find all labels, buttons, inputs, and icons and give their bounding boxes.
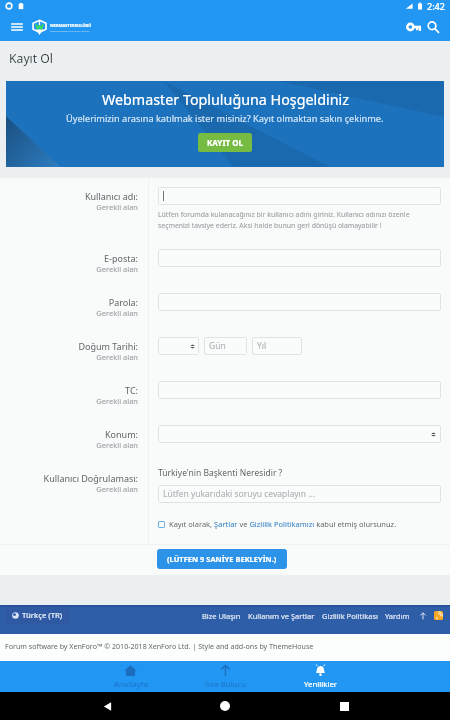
staticText: TC: [125,384,138,396]
staticText: Konum: [105,428,138,440]
staticText: KAYIT OL [207,137,243,148]
staticText: Türkiye'nin Başkenti Neresidir ? [158,467,283,479]
button[interactable]: Yukarı [417,610,428,621]
staticText: Webmasterlerin Buluşma Noktası [50,29,90,32]
staticText: Parola: [108,296,138,308]
button[interactable]: Ara [423,17,443,37]
staticText: Gerekli alan [96,484,138,494]
button[interactable]: AnaSayfa [83,661,178,692]
staticText: Yıl [257,340,267,352]
staticText: Gerekli alan [96,396,138,406]
staticText: Gerekli alan [96,202,138,212]
staticText: Kayıt Ol [9,50,53,67]
staticText: Gerekli alan [96,264,138,274]
staticText: Forum software by XenForo™ © 2010-2018 X… [5,641,314,651]
staticText: Türkçe (TR) [22,610,63,621]
button[interactable]: Gizlilik Politikası [322,611,378,621]
button[interactable]: Menu [6,16,28,38]
staticText: Lütfen yukarıdaki soruyu cevaplayın ... [163,488,316,500]
button[interactable]: RSS [434,611,443,620]
button[interactable]: Giriş yap [405,18,423,36]
button[interactable]: Sıra Bulucu [178,661,273,692]
staticText: E-posta: [104,252,138,264]
staticText: Webmaster Topluluğuna Hoşgeldiniz [102,90,349,109]
button[interactable]: Ana ekran [213,694,237,718]
button[interactable]: Türkçe (TR) [6,607,69,624]
button[interactable]: (LÜTFEN 9 SANİYE BEKLEYİN.) [157,549,287,569]
button[interactable]: Son uygulamalar [332,694,356,718]
staticText: (LÜTFEN 9 SANİYE BEKLEYİN.) [167,554,277,564]
button[interactable]: Kullanım ve Şartlar [248,611,315,621]
staticText: Üyelerimizin arasına katılmak ister misi… [66,112,384,125]
staticText: Kullanıcı adı: [84,190,138,202]
button[interactable]: KAYIT OL [198,133,252,152]
staticText: Gerekli alan [96,308,138,318]
staticText: Doğum Tarihi: [78,340,138,352]
staticText: 2:42 [427,0,445,12]
staticText: Yenilikler [304,679,338,690]
button[interactable]: Bize Ulaşın [202,611,241,621]
staticText: Kullanıcı Doğrulaması: [43,472,138,484]
button[interactable]: Yenilikler [273,661,368,692]
staticText: WEBMASTERKULÜBÜ [50,23,92,28]
button[interactable]: Yardım [385,611,410,621]
button[interactable]: Geri [95,694,119,718]
staticText: Gerekli alan [96,352,138,362]
button[interactable]: Kayıt olarak, Şartlar ve Gizlilik Politi… [158,519,397,529]
staticText: Gerekli alan [96,440,138,450]
staticText: Lütfen forumda kulanacağınız bir kullanı… [158,210,441,230]
staticText: AnaSayfa [114,679,148,690]
staticText: Sıra Bulucu [205,679,247,690]
staticText: Kayıt olarak, Şartlar ve Gizlilik Politi… [169,519,397,529]
staticText: Gün [209,340,226,352]
